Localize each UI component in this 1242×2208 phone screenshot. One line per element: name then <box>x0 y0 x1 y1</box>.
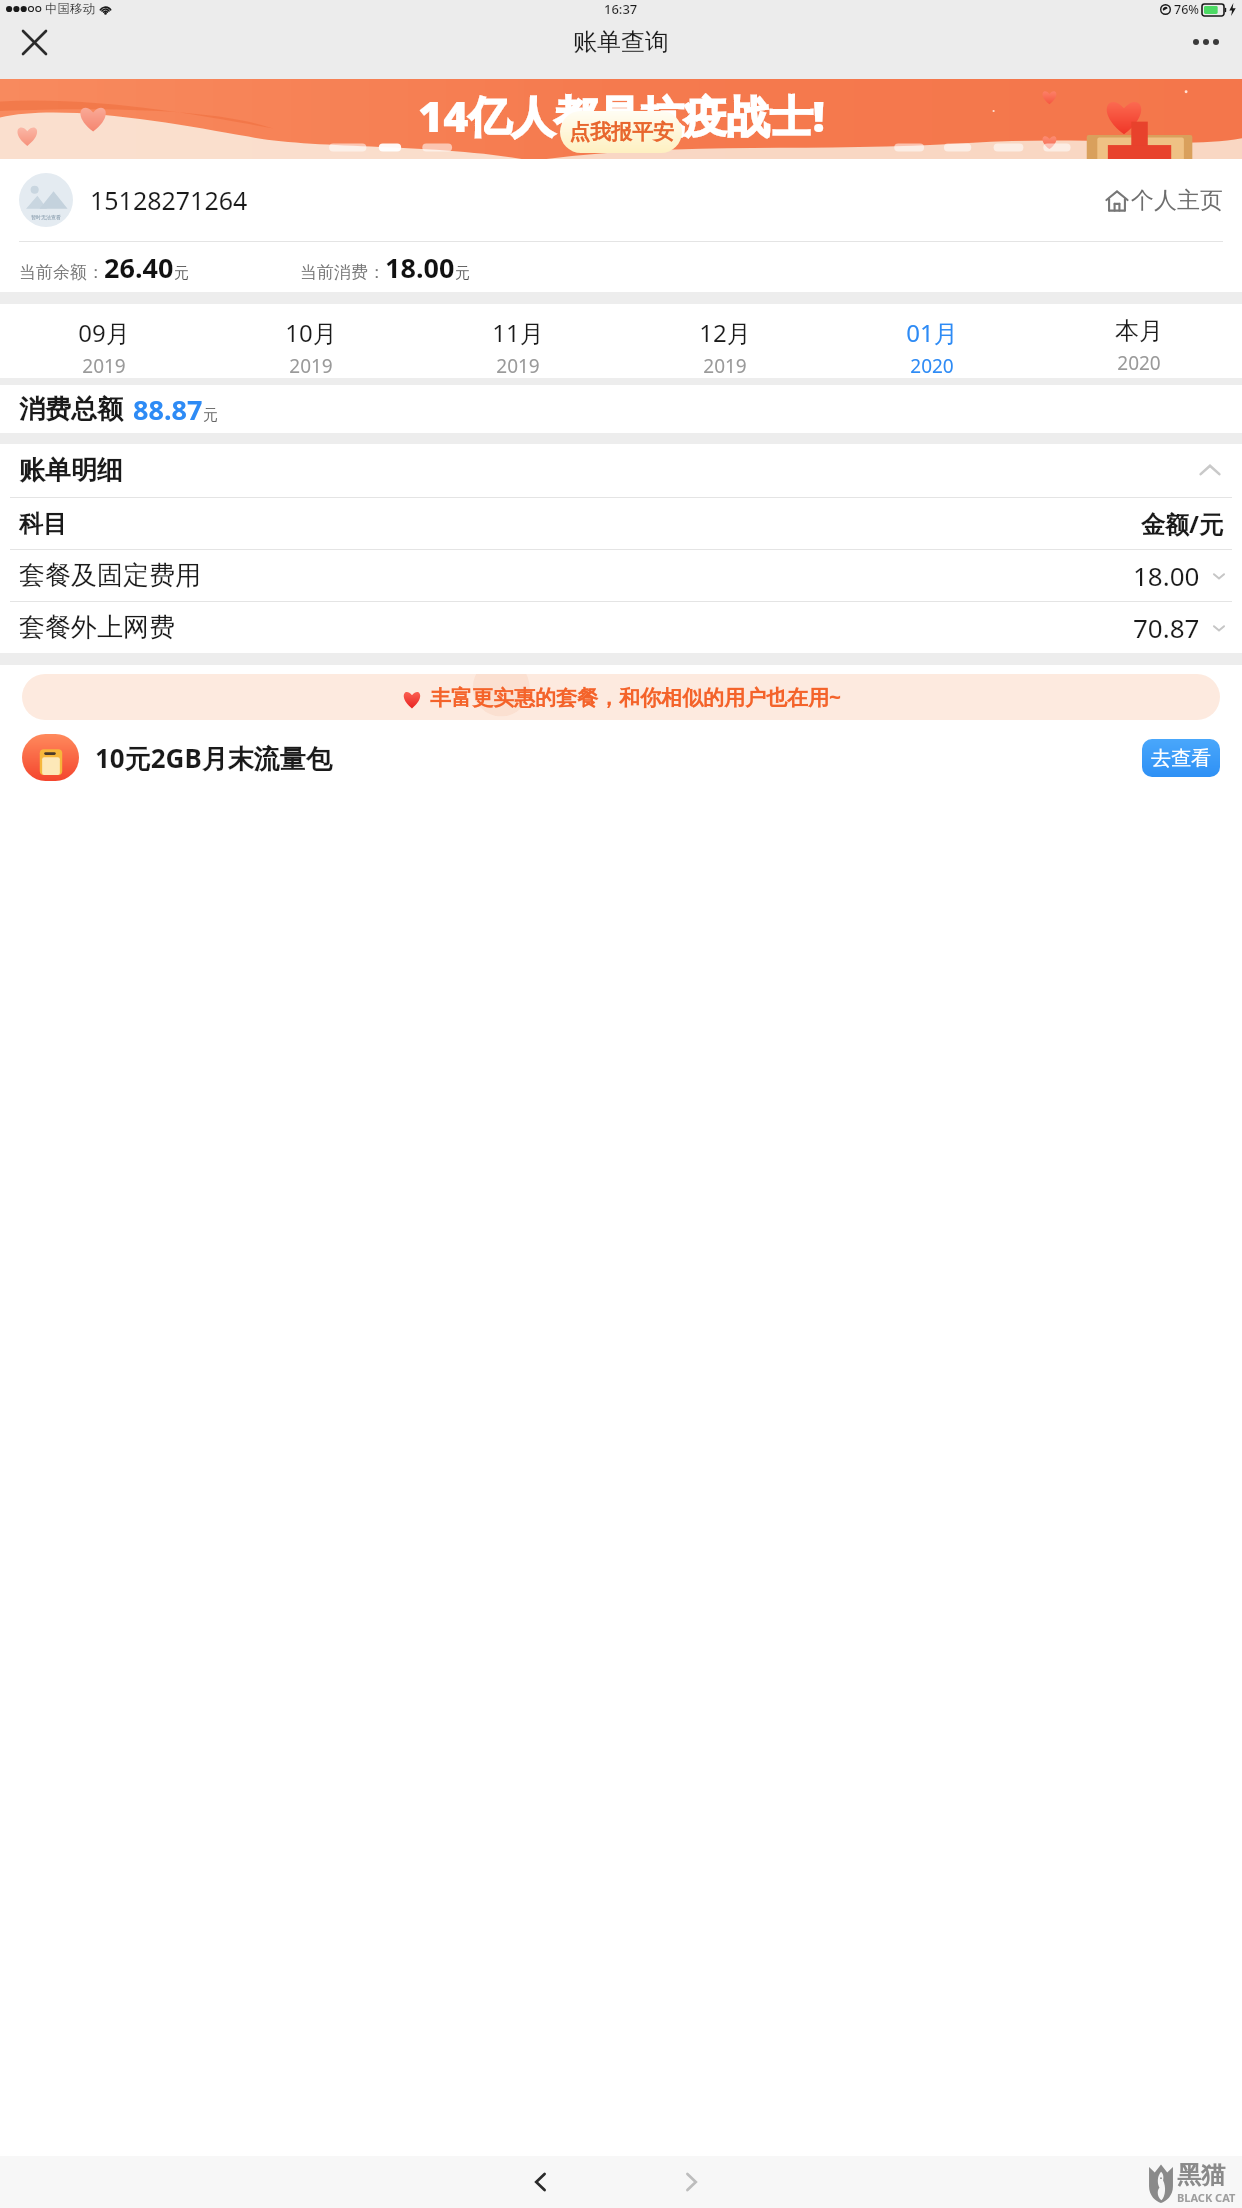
button[interactable]: 09月 <box>0 304 207 378</box>
staticText: 10元2GB月末流量包 <box>95 740 332 776</box>
staticText: 当前消费： <box>300 262 385 283</box>
staticText: 18.00 <box>1133 558 1200 593</box>
staticText: 消费总额 <box>19 393 123 426</box>
button[interactable]: 套餐及固定费用 <box>0 550 1242 601</box>
staticText: 18.00 <box>385 249 455 286</box>
staticText: 元 <box>203 406 218 425</box>
staticText: 金额/元 <box>1141 507 1223 540</box>
staticText: 10月 <box>285 316 337 349</box>
staticText: 11月 <box>492 316 544 349</box>
staticText: 元 <box>174 264 189 283</box>
staticText: 2019 <box>289 353 333 378</box>
button[interactable]: Close <box>10 18 58 66</box>
staticText: 16:37 <box>604 0 638 18</box>
staticText: 丰富更实惠的套餐，和你相似的用户也在用~ <box>430 683 842 712</box>
button[interactable]: 个人主页 <box>1105 178 1223 223</box>
other: Collapse <box>1197 458 1223 484</box>
button[interactable]: 套餐外上网费 <box>0 602 1242 653</box>
staticText: 2019 <box>703 353 747 378</box>
staticText: 本月 <box>1115 316 1163 346</box>
button[interactable]: 10元2GB月末流量包 <box>0 734 1242 781</box>
button[interactable]: Back <box>514 2156 568 2208</box>
button[interactable]: 点我报平安 <box>560 111 682 153</box>
staticText: 暂时无法查看 <box>31 214 61 220</box>
staticText: 70.87 <box>1133 610 1200 645</box>
staticText: 当前余额： <box>19 262 104 283</box>
staticText: 15128271264 <box>90 183 248 217</box>
button[interactable]: 丰富更实惠的套餐，和你相似的用户也在用~ <box>22 674 1220 720</box>
staticText: 账单查询 <box>573 27 669 57</box>
staticText: 套餐外上网费 <box>19 611 175 644</box>
staticText: BLACK CAT <box>1177 2190 1236 2205</box>
button[interactable]: 去查看 <box>1142 739 1220 777</box>
staticText: 88.87 <box>133 391 203 428</box>
button[interactable]: 01月 <box>828 304 1035 378</box>
button[interactable]: 12月 <box>621 304 828 378</box>
staticText: 2019 <box>496 353 540 378</box>
staticText: 2020 <box>910 353 954 378</box>
staticText: 个人主页 <box>1131 186 1223 215</box>
staticText: 09月 <box>78 316 130 349</box>
staticText: 科目 <box>19 509 67 539</box>
staticText: 26.40 <box>104 249 174 286</box>
staticText: 元 <box>455 264 470 283</box>
staticText: 2020 <box>1117 350 1161 376</box>
button[interactable]: 账单明细 <box>0 444 1242 497</box>
button[interactable]: 本月 <box>1035 304 1242 378</box>
button[interactable]: 10月 <box>207 304 414 378</box>
staticText: 黑猫 <box>1177 2160 1225 2190</box>
staticText: 套餐及固定费用 <box>19 559 201 592</box>
staticText: 去查看 <box>1151 746 1211 771</box>
staticText: 01月 <box>906 316 958 349</box>
staticText: 中国移动 <box>45 1 95 17</box>
button[interactable]: Forward <box>664 2156 718 2208</box>
staticText: 14亿人都是抗疫战士! <box>418 86 825 145</box>
staticText: 76% <box>1174 1 1199 18</box>
staticText: 2019 <box>82 353 126 378</box>
staticText: 点我报平安 <box>569 119 674 145</box>
button[interactable]: More options <box>1182 18 1230 66</box>
staticText: 12月 <box>699 316 751 349</box>
staticText: 账单明细 <box>19 454 123 487</box>
button[interactable]: 14亿人都是抗疫战士! <box>0 79 1242 159</box>
button[interactable]: 11月 <box>414 304 621 378</box>
